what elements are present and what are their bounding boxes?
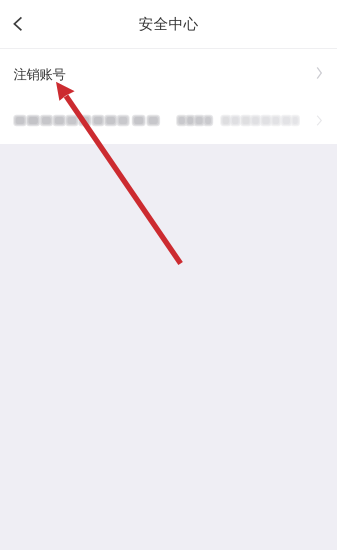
button[interactable]: Back bbox=[0, 0, 40, 48]
button[interactable]: 注销账号 bbox=[0, 49, 337, 97]
staticText: 安全中心 bbox=[138, 15, 198, 33]
button[interactable] bbox=[0, 97, 337, 144]
staticText: 注销账号 bbox=[13, 66, 65, 83]
